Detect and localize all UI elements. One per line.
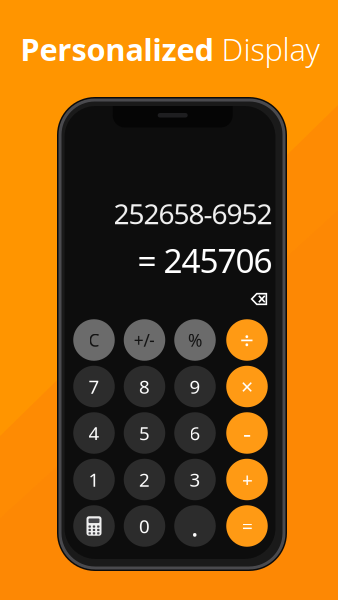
staticText: 2 xyxy=(139,467,150,492)
button[interactable]: - xyxy=(226,412,268,454)
button[interactable]: 4 xyxy=(73,412,115,454)
staticText: +/- xyxy=(134,328,155,351)
staticText: = xyxy=(241,513,252,539)
button[interactable]: 1 xyxy=(73,459,115,500)
button[interactable]: 8 xyxy=(124,366,165,407)
staticText: . xyxy=(191,507,199,545)
button[interactable]: + xyxy=(226,459,268,500)
staticText: 252658-6952 xyxy=(113,195,272,232)
staticText: 6 xyxy=(189,421,200,445)
button[interactable]: 2 xyxy=(124,459,165,500)
button[interactable]: × xyxy=(226,366,268,407)
button[interactable]: 7 xyxy=(73,366,115,407)
button[interactable]: . xyxy=(174,505,216,547)
staticText: = 245706 xyxy=(137,238,272,282)
staticText: Personalized xyxy=(20,29,213,69)
button[interactable]: 0 xyxy=(124,505,165,547)
staticText: 7 xyxy=(88,374,99,399)
staticText: + xyxy=(241,466,252,493)
staticText: C xyxy=(88,328,99,351)
button[interactable]: % xyxy=(174,319,216,361)
button[interactable]: ÷ xyxy=(226,319,268,361)
staticText: - xyxy=(243,416,251,450)
staticText: 1 xyxy=(88,467,99,492)
staticText: 9 xyxy=(189,374,200,399)
staticText: 8 xyxy=(139,374,150,399)
staticText: Display xyxy=(221,29,319,69)
button[interactable]: 5 xyxy=(124,412,165,454)
staticText: 5 xyxy=(139,421,150,445)
staticText: × xyxy=(241,372,253,401)
button[interactable]: 6 xyxy=(174,412,216,454)
staticText: ÷ xyxy=(240,324,254,356)
button[interactable]: 9 xyxy=(174,366,216,407)
button[interactable]: Calculator history xyxy=(73,505,115,547)
button[interactable]: C xyxy=(73,319,115,361)
staticText: 0 xyxy=(139,514,150,538)
button[interactable]: Backspace xyxy=(246,288,272,310)
button[interactable]: = xyxy=(226,505,268,547)
staticText: 3 xyxy=(189,467,200,492)
button[interactable]: 3 xyxy=(174,459,216,500)
staticText: 4 xyxy=(88,421,99,445)
button[interactable]: +/- xyxy=(124,319,165,361)
staticText: % xyxy=(188,328,202,351)
